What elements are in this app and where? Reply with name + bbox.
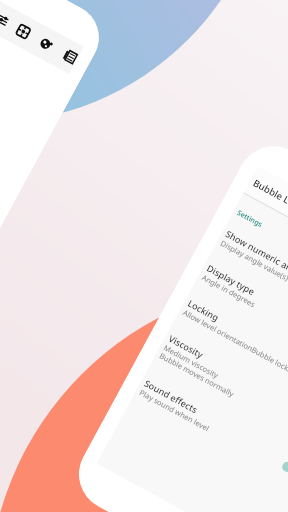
- button[interactable]: Settings list: [51, 37, 88, 76]
- button[interactable]: Level indicator: [280, 460, 288, 474]
- staticText: Display angle value(s): [219, 238, 288, 283]
- button[interactable]: Display type: [195, 256, 288, 378]
- staticText: Locking: [186, 297, 222, 323]
- staticText: Display type: [205, 262, 257, 297]
- button[interactable]: Calibrate: [0, 0, 21, 40]
- staticText: Angle in degrees: [200, 272, 258, 309]
- staticText: Viscosity: [167, 332, 206, 361]
- staticText: Play sound when level: [138, 387, 211, 433]
- button[interactable]: Viscosity: [152, 326, 288, 456]
- staticText: Settings: [235, 208, 264, 230]
- button[interactable]: Locking: [176, 291, 288, 413]
- staticText: Bubble Level: [251, 176, 288, 215]
- button[interactable]: Sound effects: [132, 371, 288, 493]
- button[interactable]: Camera level: [28, 24, 64, 64]
- staticText: Allow level orientationBubble locking: [181, 307, 288, 379]
- button[interactable]: Show numeric angles: [213, 222, 288, 344]
- staticText: Medium viscosity Bubble moves normally: [158, 342, 241, 399]
- button[interactable]: Display mode: [5, 12, 42, 51]
- staticText: Sound effects: [143, 377, 200, 415]
- staticText: Show numeric angles: [224, 227, 288, 282]
